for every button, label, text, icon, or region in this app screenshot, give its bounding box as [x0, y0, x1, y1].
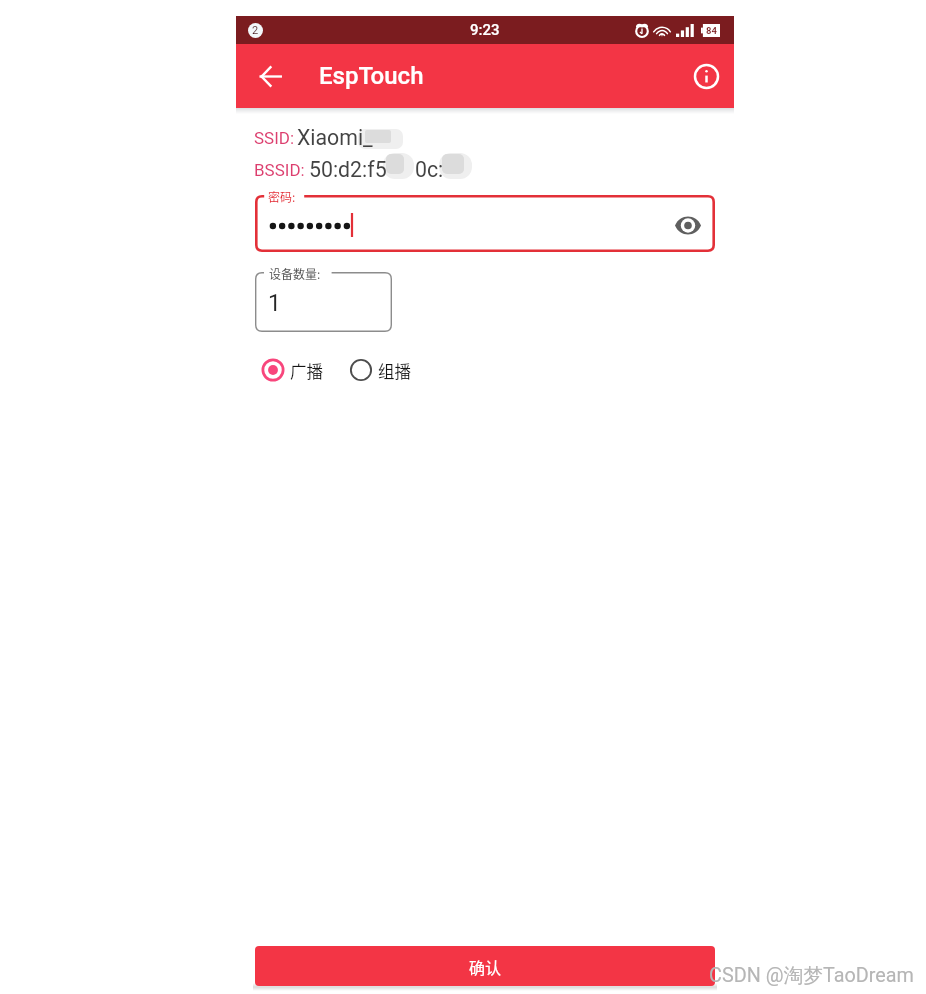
staticText: 设备数量: — [269, 265, 321, 282]
button[interactable]: 组播 — [350, 355, 411, 385]
staticText: 密码: — [268, 188, 296, 205]
staticText: Xiaomi_ — [297, 125, 373, 150]
staticText: SSID: — [254, 128, 295, 148]
staticText: CSDN @淘梦TaoDream — [709, 963, 914, 988]
button[interactable]: 广播 — [262, 355, 323, 385]
staticText: 1 — [268, 290, 281, 317]
staticText: 组播 — [378, 359, 411, 383]
button[interactable]: Show password — [667, 204, 709, 246]
staticText: 0c: — [415, 157, 444, 182]
staticText: BSSID: — [254, 160, 305, 180]
staticText: 50:d2:f5 — [309, 157, 387, 182]
staticText: 9:23 — [470, 21, 500, 39]
staticText: 确认 — [469, 955, 502, 978]
staticText: 广播 — [290, 359, 323, 383]
button[interactable]: 确认 — [255, 946, 715, 986]
staticText: 84 — [706, 25, 717, 36]
button[interactable]: Back — [248, 54, 292, 98]
staticText: 2 — [252, 24, 259, 37]
staticText: EspTouch — [319, 62, 424, 90]
button[interactable]: Info — [684, 54, 728, 98]
